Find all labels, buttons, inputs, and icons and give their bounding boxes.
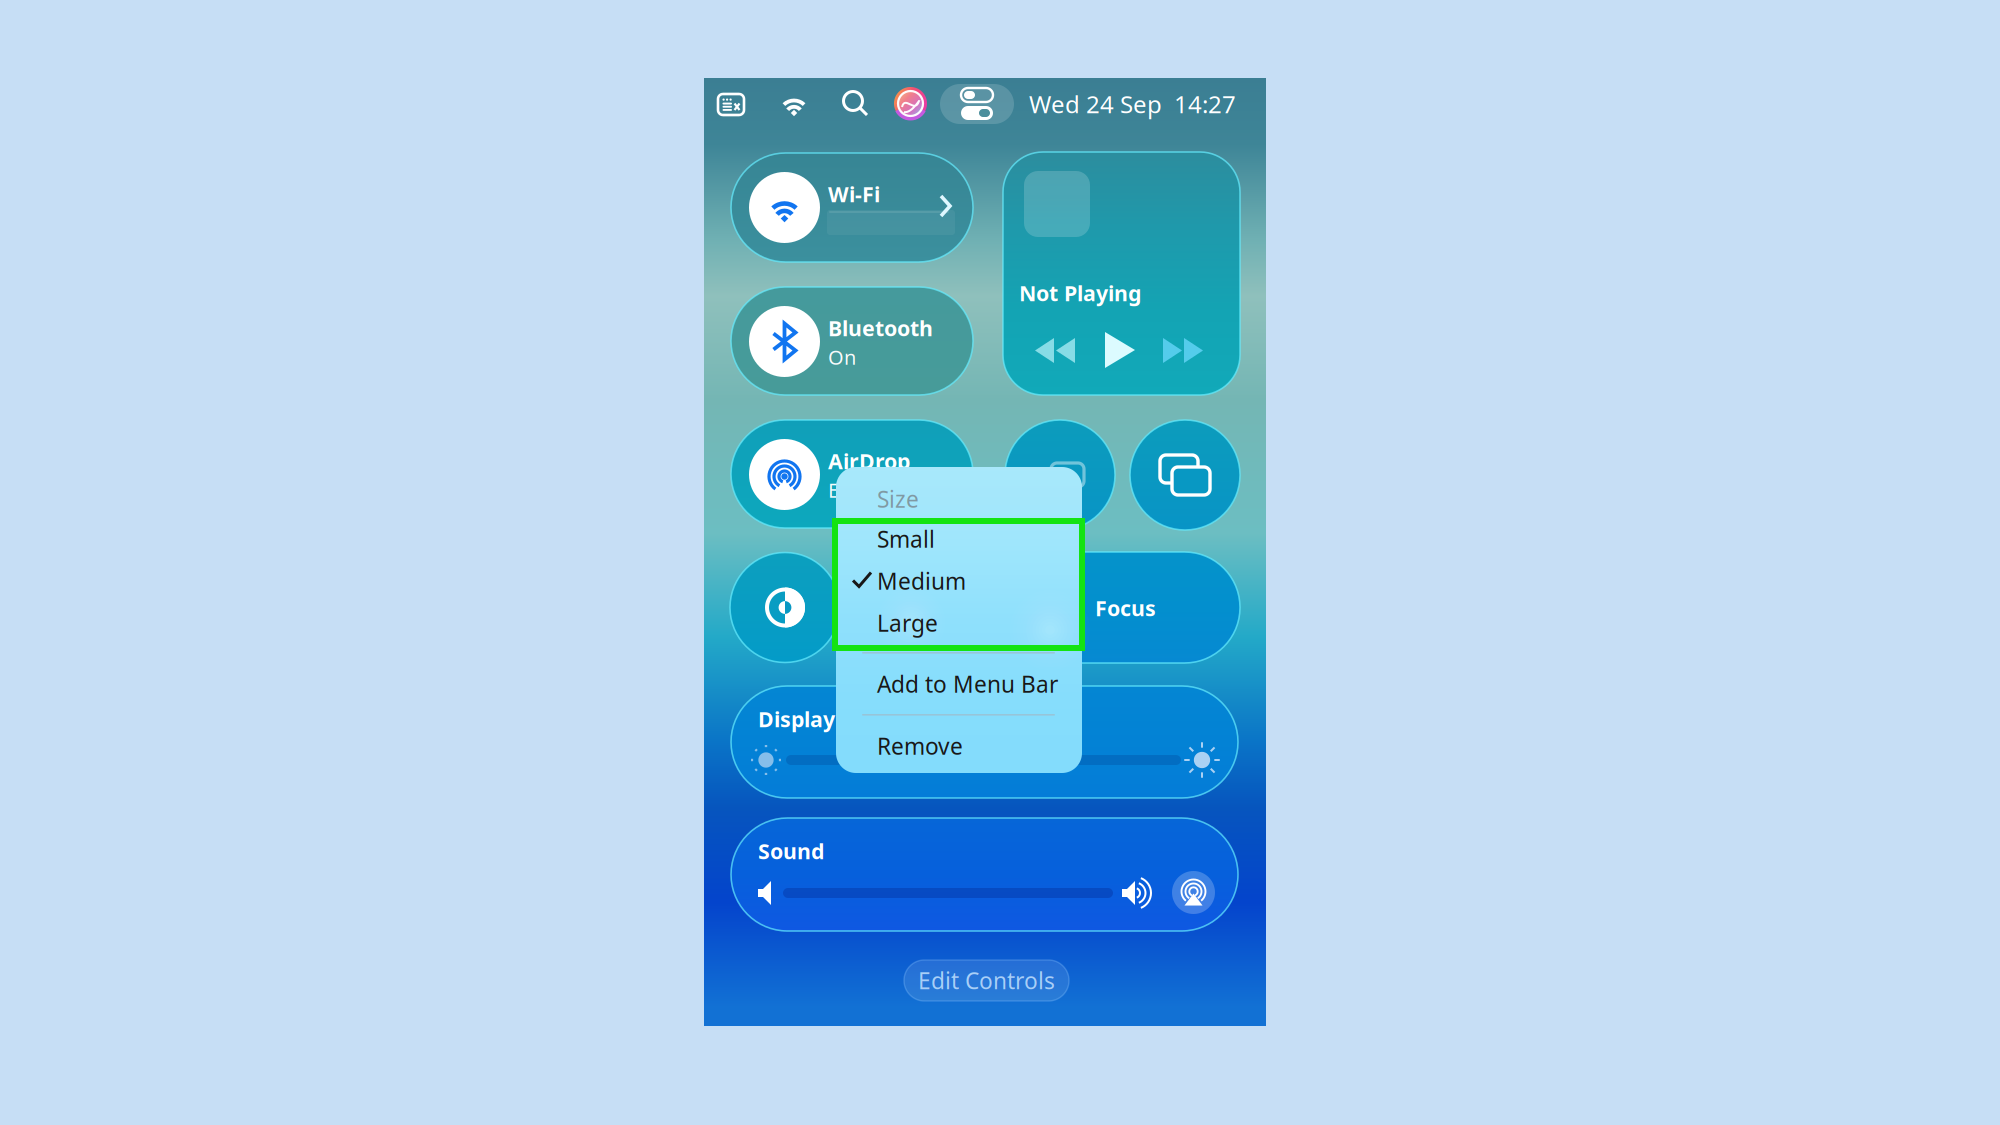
staticText: Add to Menu Bar <box>877 669 1058 699</box>
staticText: Edit Controls <box>918 965 1055 995</box>
button[interactable]: Small <box>836 519 1082 559</box>
button[interactable]: Siri <box>894 87 927 120</box>
button[interactable]: Add to Menu Bar <box>836 664 1082 704</box>
button[interactable]: Focus <box>862 552 1240 663</box>
staticText: Remove <box>877 731 963 761</box>
staticText: Focus <box>1095 594 1156 622</box>
staticText: Size <box>877 484 919 514</box>
button[interactable]: Dark Mode <box>730 552 840 662</box>
staticText: Display <box>758 705 835 733</box>
button[interactable]: Next <box>1163 338 1203 363</box>
button[interactable]: Control Center <box>940 84 1014 124</box>
button[interactable]: Wi-Fi <box>777 91 811 117</box>
button[interactable]: AirDrop <box>731 420 973 528</box>
button[interactable]: Edit Controls <box>904 960 1069 1001</box>
staticText: Medium <box>877 566 966 596</box>
button[interactable]: Large <box>836 603 1082 643</box>
button[interactable]: Bluetooth <box>731 287 973 395</box>
staticText: Sound <box>758 837 824 865</box>
button[interactable]: Sound <box>731 818 1238 931</box>
button[interactable]: Medium <box>836 561 1082 601</box>
button[interactable]: Control Strip <box>718 94 744 115</box>
staticText: Not Playing <box>1019 279 1141 307</box>
button[interactable]: Play <box>1104 332 1136 368</box>
button[interactable]: Stage Manager <box>1005 420 1115 530</box>
button[interactable]: Display <box>731 686 1238 798</box>
staticText: Wed 24 Sep 14:27 <box>1029 88 1236 120</box>
button[interactable]: Wi-Fi <box>731 153 973 262</box>
staticText: Everyone <box>828 477 913 503</box>
staticText: Large <box>877 608 938 638</box>
staticText: Bluetooth <box>828 314 933 342</box>
button[interactable]: Not Playing <box>1003 152 1240 395</box>
staticText: Wi-Fi <box>828 180 880 208</box>
staticText: AirDrop <box>828 447 910 475</box>
button[interactable]: Previous <box>1035 338 1075 363</box>
staticText: On <box>828 344 856 370</box>
button[interactable]: Spotlight Search <box>840 88 872 120</box>
staticText: Small <box>877 524 935 554</box>
button[interactable]: Remove <box>836 726 1082 766</box>
button[interactable]: AirPlay Output <box>1172 871 1215 914</box>
button[interactable]: Screen Mirroring <box>1130 420 1240 530</box>
